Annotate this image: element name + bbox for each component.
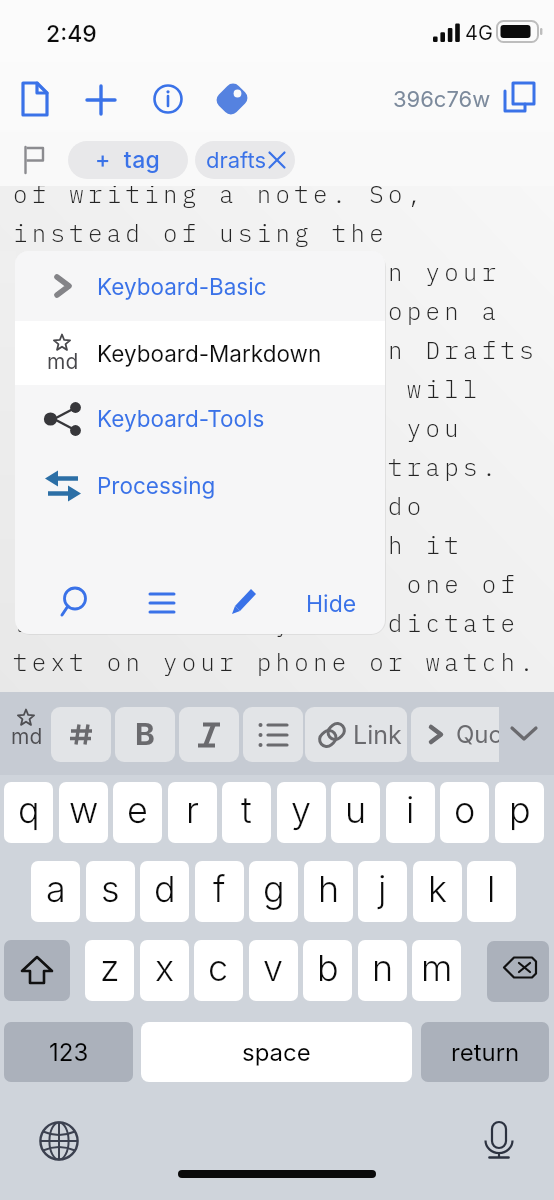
staticText: u [345,788,367,832]
staticText: Keyboard-Basic [97,273,267,300]
staticText: d [154,867,176,911]
staticText: return [451,1038,520,1067]
button[interactable]: i [386,782,435,843]
button[interactable]: q [4,782,53,843]
button[interactable]: Change keyboard [38,1120,80,1162]
button[interactable]: Hide [306,585,368,623]
staticText: instead of using the [13,217,388,248]
button[interactable]: drafts [195,141,295,179]
button[interactable]: List [139,581,185,627]
button[interactable]: Search [54,581,100,627]
button[interactable]: Hide keyboard [502,712,546,756]
button[interactable]: Add [75,74,127,126]
button[interactable]: c [194,940,243,1001]
button[interactable]: Info [142,73,194,125]
staticText: drafts [206,147,267,174]
button[interactable]: m [412,940,461,1001]
staticText: to write it in. This will [13,373,482,404]
staticText: keyboard, you could open a [13,295,501,326]
button[interactable]: Heading [51,707,111,762]
other: Shift [19,953,55,989]
button[interactable]: k [413,861,462,922]
staticText: B [135,716,155,752]
button[interactable]: Quote [411,707,499,762]
other: Italic [194,720,224,750]
staticText: y [291,788,312,832]
button[interactable]: t [222,782,271,843]
staticText: 396c76w [393,86,491,113]
button[interactable]: f [195,861,244,922]
staticText: Quote [456,720,499,749]
button[interactable]: w [59,782,108,843]
staticText: n [372,946,394,990]
staticText: j [378,867,387,911]
button[interactable]: Edit [222,581,268,627]
button[interactable]: v [249,940,298,1001]
staticText: of writing a note. So, [13,178,426,209]
staticText: 4G [465,21,493,45]
button[interactable]: h [304,861,353,922]
staticText: a way to bypass the traps. [13,451,501,482]
button[interactable]: Keyboard-Tools [15,385,385,452]
button[interactable]: + tag [68,141,188,179]
staticText: i [406,788,415,832]
button[interactable]: Open in new window [496,72,546,122]
staticText: o [454,788,476,832]
button[interactable]: New draft [12,72,64,124]
staticText: q [18,788,40,832]
button[interactable]: 396c76w [393,86,491,113]
button[interactable]: Bullet list [243,707,303,762]
button[interactable]: g [249,861,298,922]
staticText: something useful with it [13,529,463,560]
staticText: l [487,867,496,911]
button[interactable]: s [86,861,135,922]
button[interactable]: return [421,1022,549,1082]
button[interactable]: Italic [179,707,239,762]
staticText: z [100,946,120,990]
button[interactable]: j [358,861,407,922]
button[interactable]: d [140,861,189,922]
staticText: s [101,867,120,911]
staticText: 2:49 [46,20,97,48]
button[interactable]: a [31,861,80,922]
button[interactable]: 123 [4,1022,133,1082]
button[interactable]: Link [305,707,407,762]
button[interactable]: B [115,707,175,762]
button[interactable]: Shift [4,940,70,1001]
staticText: t [241,788,252,832]
staticText: r [186,788,199,832]
button[interactable]: Dictate [478,1119,520,1161]
button[interactable]: Processing [15,452,385,519]
staticText: text on your phone or watch. [13,646,538,677]
button[interactable]: Keyboard-Basic [15,251,385,321]
button[interactable]: space [141,1022,412,1082]
staticText: be a timesaver, give you [13,412,463,443]
other: Heading [68,722,94,748]
button[interactable]: e [113,782,162,843]
button[interactable]: md [15,321,385,385]
staticText: Link [353,720,402,750]
staticText: Keyboard-Markdown [97,340,322,367]
button[interactable]: Markdown keyboard [5,706,51,752]
staticText: b [317,946,339,990]
button[interactable]: o [440,782,489,843]
staticText: m [421,946,453,990]
button[interactable]: u [331,782,380,843]
button[interactable]: y [277,782,326,843]
button[interactable]: b [303,940,352,1001]
button[interactable]: r [168,782,217,843]
staticText: Hide [306,590,357,618]
staticText: the easiest ways to dictate [13,607,520,638]
button[interactable]: n [358,940,407,1001]
staticText: new dictation note in Drafts [13,334,538,365]
button[interactable]: x [140,940,189,1001]
staticText: x [155,946,175,990]
button[interactable]: Delete [487,941,549,1002]
staticText: md [47,349,79,374]
staticText: microphone buttons on your [13,256,501,287]
button[interactable]: z [85,940,134,1001]
staticText: c [208,946,229,990]
button[interactable]: p [495,782,544,843]
button[interactable]: Tags [206,73,258,125]
button[interactable]: l [467,861,516,922]
